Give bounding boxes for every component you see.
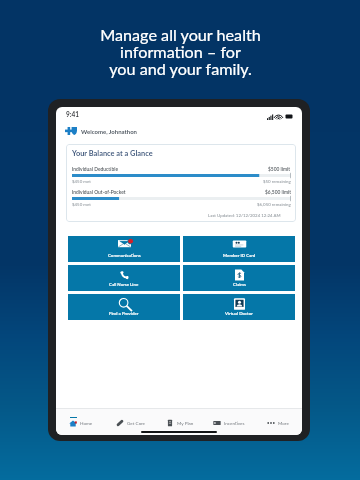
button[interactable]: My Plan — [155, 408, 204, 435]
button[interactable]: More — [253, 408, 302, 435]
button[interactable]: Member ID Card — [183, 236, 295, 262]
button[interactable]: Claims — [183, 265, 295, 291]
staticText: $450 met — [72, 179, 91, 184]
staticText: Incentives — [224, 420, 245, 426]
staticText: Communications — [108, 253, 141, 258]
staticText: $50 remaining — [263, 179, 291, 184]
staticText: My Plan — [177, 420, 194, 426]
button[interactable]: Get Care — [106, 408, 155, 435]
staticText: $500 limit — [268, 166, 291, 172]
button[interactable]: Virtual Doctor — [183, 294, 295, 320]
staticText: Claims — [233, 282, 246, 287]
staticText: Individual Out-of-Pocket — [72, 189, 126, 195]
button[interactable]: Call Nurse Line — [68, 265, 180, 291]
button[interactable]: Find a Provider — [68, 294, 180, 320]
staticText: Get Care — [127, 420, 145, 426]
staticText: Manage all your health information – for… — [100, 25, 261, 79]
button[interactable]: Incentives — [204, 408, 253, 435]
staticText: Find a Provider — [109, 311, 139, 316]
staticText: $6,500 limit — [265, 189, 291, 195]
staticText: $450 met — [72, 202, 91, 207]
button[interactable]: Home — [56, 408, 106, 435]
staticText: More — [278, 420, 289, 426]
staticText: Last Updated: 12/12/2024 12:24 AM — [208, 213, 281, 218]
button[interactable]: Communications — [68, 236, 180, 262]
staticText: Member ID Card — [223, 253, 256, 258]
staticText: 9:41 — [66, 111, 79, 119]
staticText: Virtual Doctor — [225, 311, 253, 316]
staticText: $6,050 remaining — [257, 202, 291, 207]
staticText: Your Balance at a Glance — [72, 149, 153, 158]
staticText: Welcome, Johnathon — [81, 128, 137, 135]
staticText: Home — [80, 420, 93, 426]
staticText: Individual Deductible — [72, 166, 118, 172]
staticText: Call Nurse Line — [109, 282, 139, 287]
